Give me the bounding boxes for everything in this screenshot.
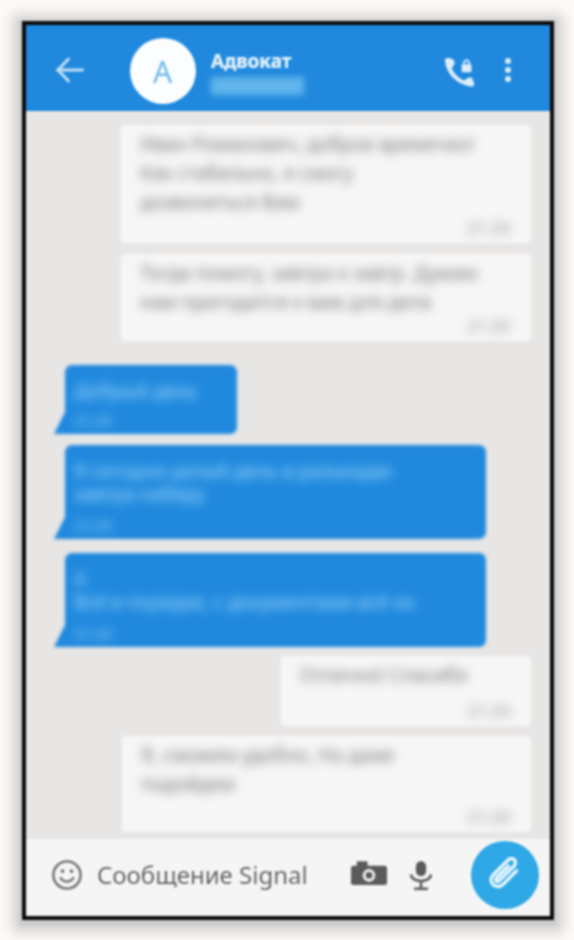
button[interactable]: Emoji xyxy=(45,853,89,897)
button[interactable]: Back xyxy=(47,47,93,93)
staticText: завтра наберу xyxy=(74,481,205,507)
button[interactable]: More options xyxy=(488,50,528,90)
button[interactable]: Record voice message xyxy=(399,853,443,897)
button[interactable]: Иван Романович, доброе времечко! xyxy=(121,125,531,243)
staticText: Иван Романович, доброе времечко! xyxy=(140,131,475,157)
button[interactable]: А xyxy=(65,553,486,647)
button[interactable]: Я сегодня целый день в разъездах xyxy=(65,445,486,539)
staticText: Тогда помогу, завтра к завтр. Думаю xyxy=(140,260,479,286)
staticText: Я, сможем удобно, Но даже xyxy=(141,742,395,768)
staticText: подойдем xyxy=(141,771,235,797)
button[interactable]: Добрый день xyxy=(65,365,237,434)
staticText: 21:25 xyxy=(74,623,113,643)
staticText: 21:20 xyxy=(467,314,511,337)
staticText: Я сегодня целый день в разъездах xyxy=(74,458,393,484)
staticText: A xyxy=(153,51,173,92)
staticText: Адвокат xyxy=(211,48,292,74)
staticText: Отлично! Спасибо xyxy=(300,662,468,688)
button[interactable]: Camera xyxy=(345,851,393,899)
button[interactable]: Сообщение Signal xyxy=(97,858,308,891)
staticText: нам пригодится к вам для дела xyxy=(140,289,432,315)
staticText: 21:20 xyxy=(467,216,511,239)
staticText: Как стабильно, я смогу xyxy=(140,160,353,186)
button[interactable]: Secure voice call xyxy=(435,47,481,93)
staticText: А xyxy=(74,566,87,592)
staticText: Сообщение Signal xyxy=(97,858,308,891)
staticText: 21:25 xyxy=(74,515,113,535)
button[interactable]: Тогда помогу, завтра к завтр. Думаю xyxy=(121,254,531,341)
staticText: 21:25 xyxy=(74,410,113,430)
staticText: 21:20 xyxy=(467,699,511,722)
button[interactable]: Отлично! Спасибо xyxy=(281,656,531,726)
button[interactable]: Attach file xyxy=(471,841,539,909)
button[interactable]: Я, сможем удобно, Но даже xyxy=(122,736,531,832)
staticText: Всё в порядке, с документами всё ок xyxy=(74,589,415,615)
button[interactable]: A xyxy=(130,38,196,104)
staticText: 21:20 xyxy=(467,805,511,828)
staticText: дозвониться Вам xyxy=(140,189,300,215)
staticText: Добрый день xyxy=(74,378,198,404)
